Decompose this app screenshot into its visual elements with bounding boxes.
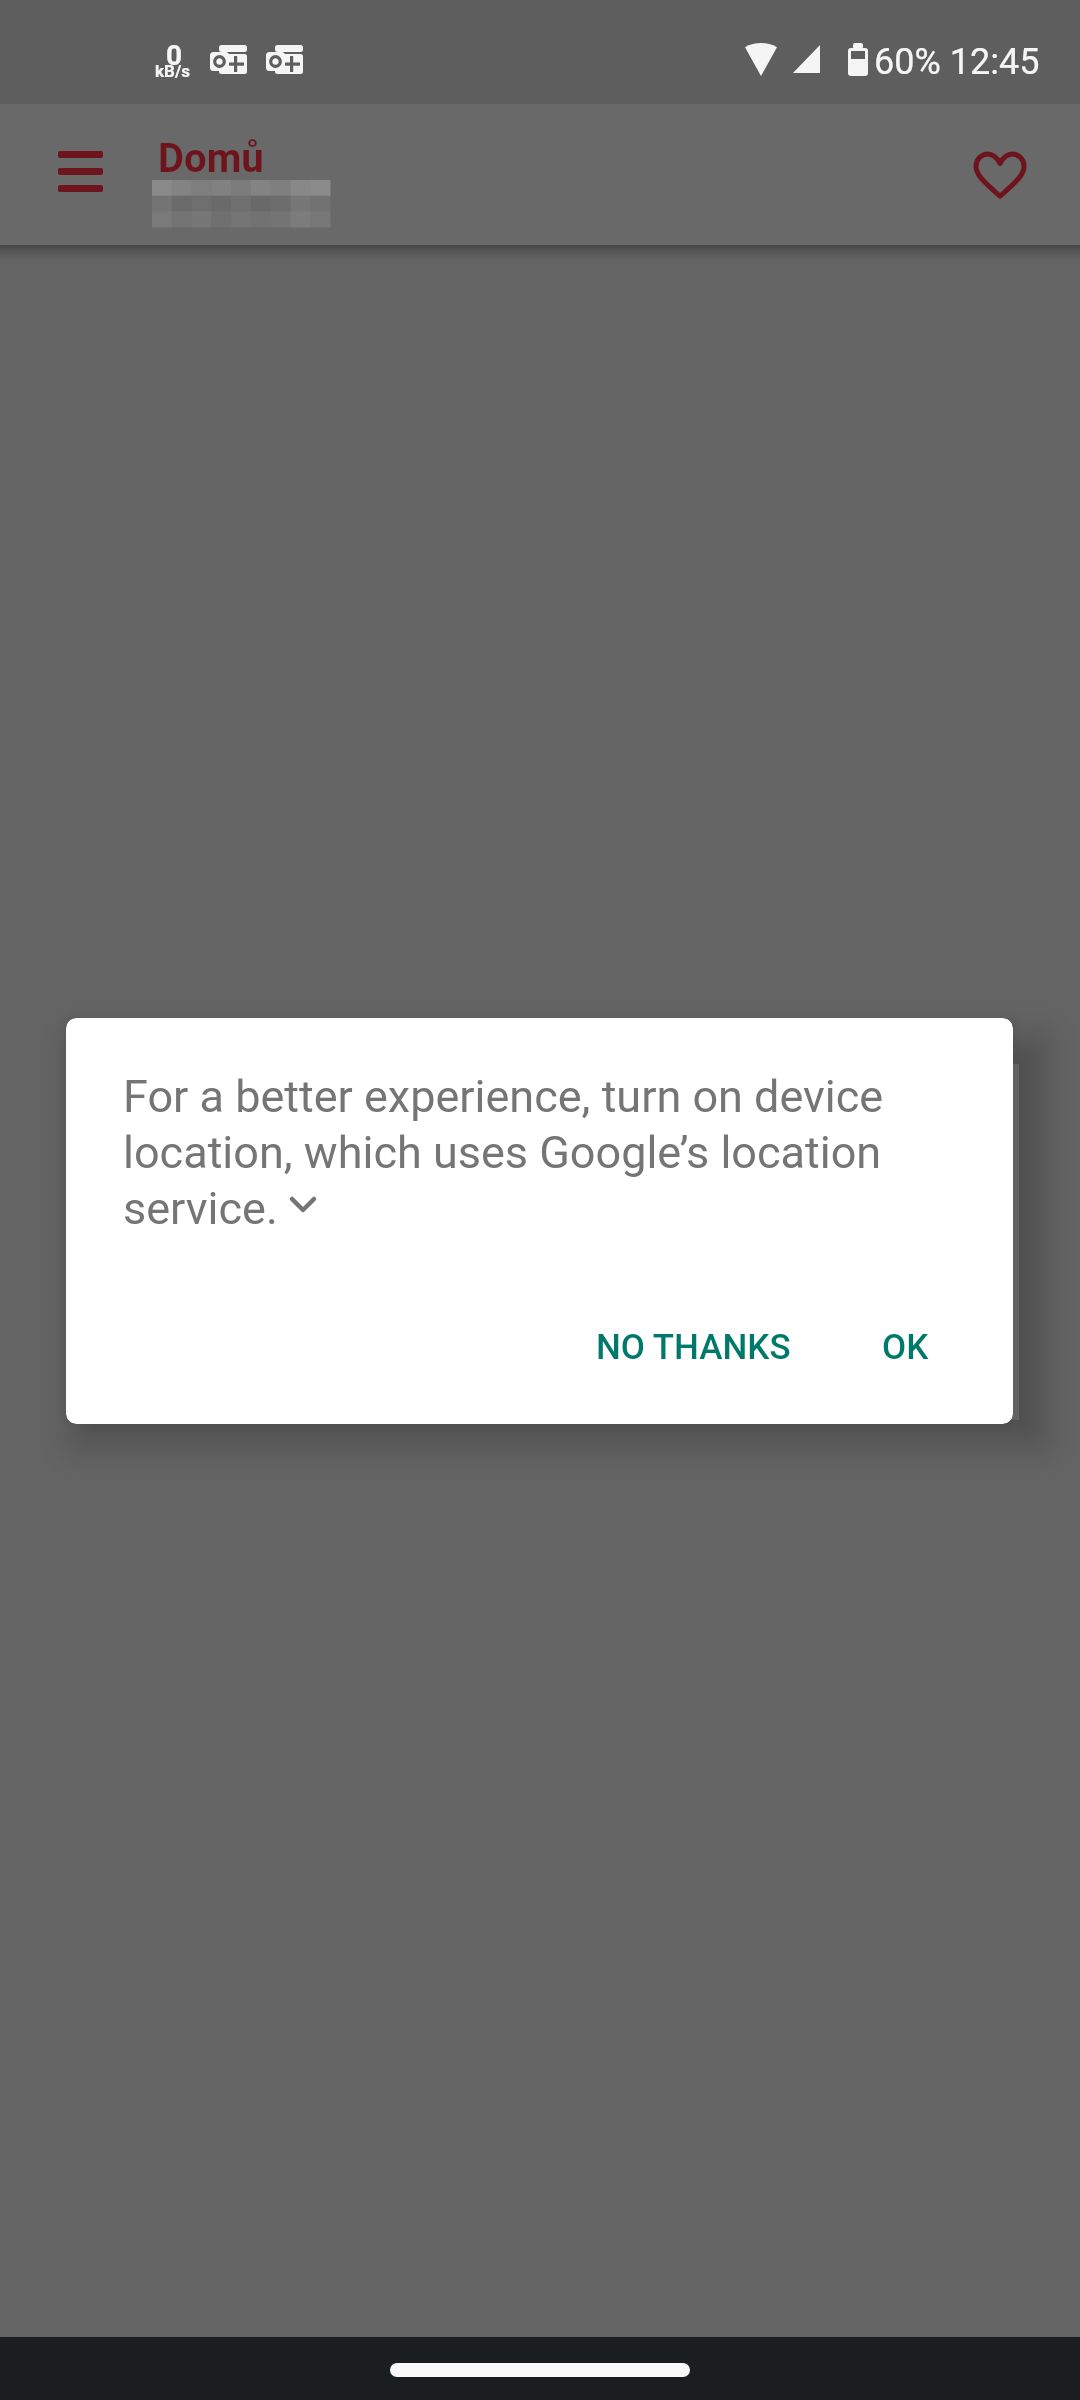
button[interactable] (390, 2363, 690, 2377)
button[interactable]: OK (858, 1309, 972, 1389)
button[interactable] (40, 136, 120, 208)
staticText: service. (123, 1182, 278, 1235)
staticText: Domů (158, 135, 264, 182)
staticText: location, which uses Google’s location (123, 1126, 882, 1179)
staticText: 60% 12:45 (874, 41, 1040, 83)
staticText: NO THANKS (596, 1327, 791, 1368)
staticText: kB/s (155, 61, 191, 81)
button[interactable]: NO THANKS (572, 1309, 812, 1389)
staticText: For a better experience, turn on device (123, 1070, 884, 1123)
button[interactable] (960, 134, 1040, 214)
staticText: OK (882, 1327, 929, 1368)
staticText: 0 (166, 39, 183, 72)
